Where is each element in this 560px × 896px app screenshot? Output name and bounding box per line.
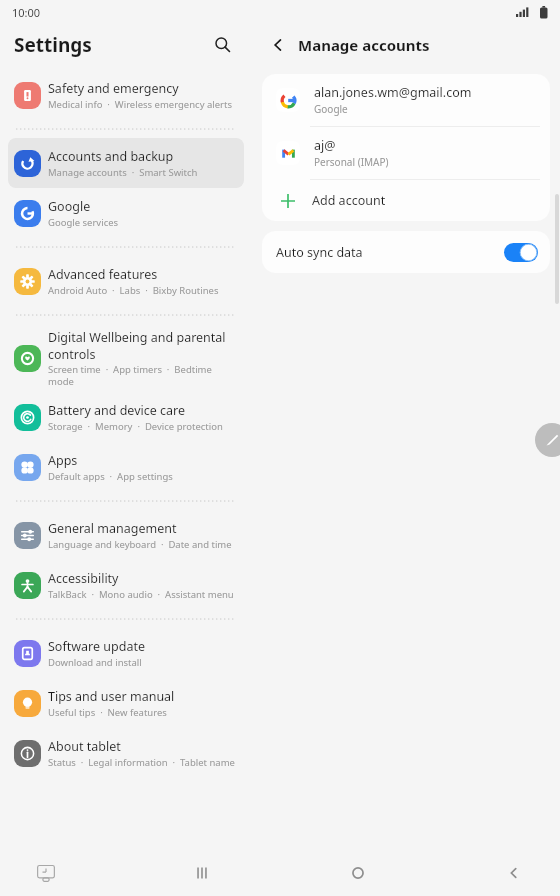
staticText: Software update: [48, 638, 145, 655]
staticText: Default apps · App settings: [48, 470, 173, 483]
staticText: Useful tips · New features: [48, 706, 167, 719]
button[interactable]: About tablet: [8, 728, 244, 778]
staticText: 10:00: [12, 5, 41, 20]
staticText: About tablet: [48, 738, 121, 755]
button[interactable]: Auto sync data: [262, 231, 550, 273]
staticText: alan.jones.wm@gmail.com: [314, 84, 472, 101]
button[interactable]: Recents: [180, 851, 224, 895]
staticText: Settings: [14, 32, 92, 58]
staticText: Accounts and backup: [48, 148, 174, 165]
staticText: aj@: [314, 137, 336, 154]
staticText: Add account: [312, 192, 386, 209]
staticText: Language and keyboard · Date and time: [48, 538, 232, 551]
staticText: General management: [48, 520, 177, 537]
button[interactable]: Apps: [8, 442, 244, 492]
staticText: Screen time · App timers · Bedtime mode: [48, 363, 238, 388]
staticText: Google: [48, 198, 91, 215]
button[interactable]: Search: [208, 30, 238, 60]
button[interactable]: Digital Wellbeing and parental controls: [8, 324, 244, 392]
staticText: Apps: [48, 452, 78, 469]
button[interactable]: alan.jones.wm@gmail.com: [262, 74, 550, 126]
button[interactable]: Safety and emergency: [8, 70, 244, 120]
staticText: Battery and device care: [48, 402, 186, 419]
button[interactable]: Advanced features: [8, 256, 244, 306]
staticText: Manage accounts: [298, 35, 430, 55]
staticText: Android Auto · Labs · Bixby Routines: [48, 284, 219, 297]
button[interactable]: Edit: [535, 423, 560, 457]
button[interactable]: General management: [8, 510, 244, 560]
staticText: Medical info · Wireless emergency alerts: [48, 98, 233, 111]
button[interactable]: Home: [336, 851, 380, 895]
button[interactable]: Add account: [262, 180, 550, 221]
staticText: Tips and user manual: [48, 688, 175, 705]
button[interactable]: Back: [264, 31, 292, 59]
button[interactable]: Battery and device care: [8, 392, 244, 442]
button[interactable]: Accessibility: [8, 560, 244, 610]
staticText: Auto sync data: [276, 244, 504, 261]
staticText: TalkBack · Mono audio · Assistant menu: [48, 588, 234, 601]
button[interactable]: Accounts and backup: [8, 138, 244, 188]
button[interactable]: Back: [492, 851, 536, 895]
staticText: Digital Wellbeing and parental controls: [48, 329, 238, 362]
button[interactable]: Google: [8, 188, 244, 238]
staticText: Status · Legal information · Tablet name: [48, 756, 235, 769]
button[interactable]: keyboard: [24, 851, 68, 895]
button[interactable]: Tips and user manual: [8, 678, 244, 728]
staticText: Storage · Memory · Device protection: [48, 420, 223, 433]
staticText: Personal (IMAP): [314, 155, 389, 169]
button[interactable]: aj@: [262, 127, 550, 179]
button[interactable]: Software update: [8, 628, 244, 678]
staticText: Safety and emergency: [48, 80, 179, 97]
staticText: Download and install: [48, 656, 142, 669]
staticText: Accessibility: [48, 570, 119, 587]
staticText: Google services: [48, 216, 119, 229]
staticText: Manage accounts · Smart Switch: [48, 166, 198, 179]
staticText: Advanced features: [48, 266, 158, 283]
staticText: Google: [314, 102, 348, 116]
